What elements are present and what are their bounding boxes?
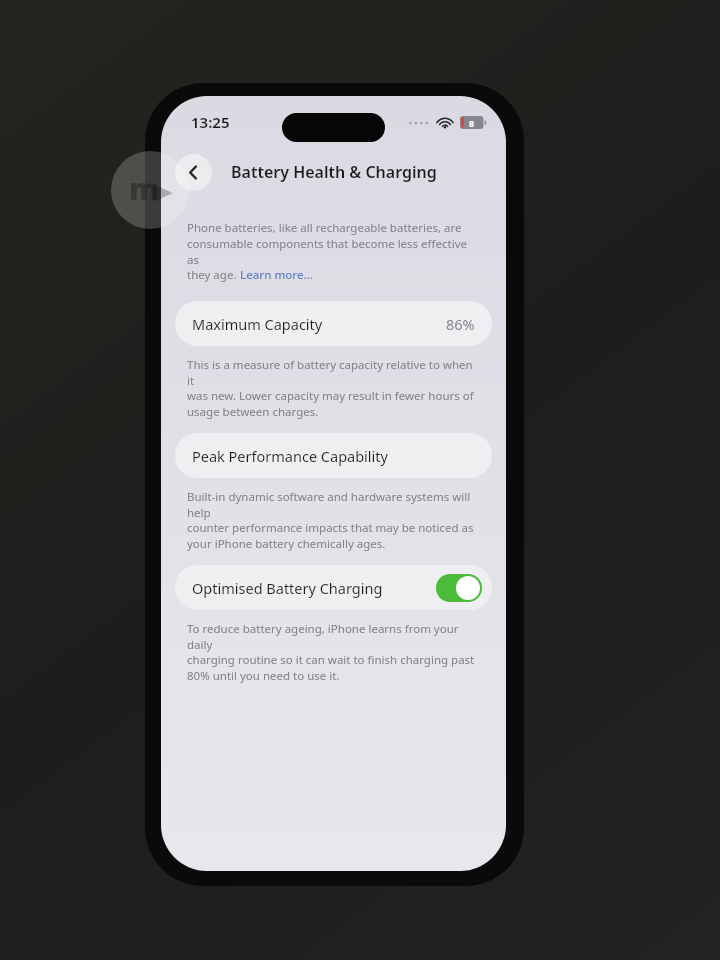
staticText: 80% until you need to use it. (187, 668, 340, 684)
staticText: Optimised Battery Charging (192, 578, 383, 598)
staticText: Phone batteries, like all rechargeable b… (187, 220, 462, 236)
button[interactable]: Peak Performance Capability (175, 433, 492, 478)
button[interactable]: Learn more... (240, 267, 313, 283)
staticText: they age. (187, 267, 240, 283)
staticText: Peak Performance Capability (192, 446, 388, 466)
staticText: your iPhone battery chemically ages. (187, 536, 386, 552)
staticText: usage between charges. (187, 404, 319, 420)
staticText: Battery Health & Charging (231, 161, 437, 183)
staticText: consumable components that become less e… (187, 236, 480, 267)
staticText: m (129, 168, 159, 209)
staticText: 86% (446, 314, 475, 334)
button[interactable]: Optimised Battery Charging (175, 565, 492, 610)
staticText: 8 (469, 117, 475, 129)
staticText: This is a measure of battery capacity re… (187, 357, 480, 388)
staticText: was new. Lower capacity may result in fe… (187, 388, 474, 404)
staticText: 13:25 (191, 112, 230, 132)
button[interactable]: Maximum Capacity (175, 301, 492, 346)
button[interactable]: Back (175, 154, 212, 191)
staticText: Maximum Capacity (192, 314, 323, 334)
staticText: counter performance impacts that may be … (187, 520, 474, 536)
button[interactable]: Optimised Battery Charging toggle (436, 574, 482, 602)
staticText: To reduce battery ageing, iPhone learns … (187, 621, 480, 652)
staticText: charging routine so it can wait to finis… (187, 652, 475, 668)
staticText: Built-in dynamic software and hardware s… (187, 489, 480, 520)
